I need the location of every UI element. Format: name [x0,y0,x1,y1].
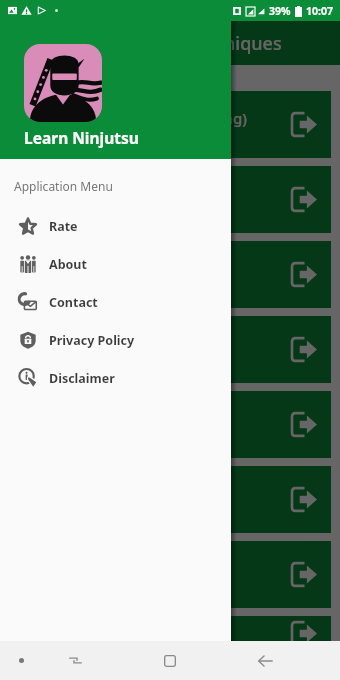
button[interactable]: Ninja Weapons [9,241,331,308]
button[interactable]: Unarmed Combat [9,466,331,533]
button[interactable]: Disclaimer [0,359,231,397]
button[interactable]: Rate [0,207,231,245]
button[interactable]: Keyboard switch [28,641,122,680]
staticText: Application Menu [14,178,113,194]
button[interactable]: Ninja Meditation [9,616,331,641]
button[interactable]: Recents [122,641,217,680]
staticText: Stealth & Escaping [25,333,158,353]
button[interactable]: Back [217,641,312,680]
button[interactable]: Introduction of Ninja (Training) [9,91,331,158]
staticText: 39% [269,4,291,18]
button[interactable]: About [0,245,231,283]
button[interactable]: Sword Techniques [9,541,331,608]
button[interactable]: Ninja Hand Signs [9,391,331,458]
staticText: Learn Ninjutsu Techniques [53,31,282,56]
staticText: Learn Ninjutsu [24,127,139,148]
staticText: Disclaimer [49,370,115,387]
staticText: Contact [49,294,98,311]
button[interactable]: Voice assistant [12,651,31,670]
staticText: Privacy Policy [49,332,135,349]
staticText: About [49,256,87,273]
staticText: Introduction of Ninja (Training) [25,108,247,128]
staticText: Ninja Weapons [25,258,133,278]
button[interactable]: Ninjutsu Stances [9,166,331,233]
button[interactable]: Contact [0,283,231,321]
staticText: 10:07 [306,4,333,18]
staticText: Ninjutsu Stances [25,183,146,203]
button[interactable]: Privacy Policy [0,321,231,359]
button[interactable]: Stealth & Escaping [9,316,331,383]
staticText: Rate [49,218,78,235]
